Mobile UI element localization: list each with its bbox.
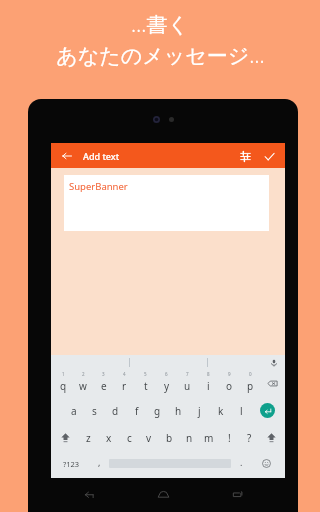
button[interactable]: , [89,451,109,476]
button[interactable]: Backspace [261,370,283,397]
button[interactable]: SuperBanner [64,175,269,231]
staticText: , [98,456,101,468]
staticText: 7 [186,371,189,377]
staticText: p [247,379,254,393]
button[interactable] [208,355,285,370]
staticText: h [175,404,182,418]
staticText: l [240,404,243,418]
staticText: c [127,431,132,445]
staticText: j [198,404,201,418]
button[interactable]: s [84,397,105,424]
staticText: o [226,379,233,393]
staticText: 3 [102,371,105,377]
staticText: n [186,431,193,445]
staticText: t [144,379,148,393]
button[interactable]: Done [260,147,278,165]
button[interactable]: Recents [224,481,250,507]
staticText: a [71,404,77,418]
button[interactable]: m [199,424,219,451]
staticText: …書く [131,10,189,39]
staticText: z [86,431,91,445]
staticText: f [135,404,139,418]
staticText: i [207,379,210,393]
button[interactable]: b [159,424,179,451]
staticText: g [154,404,161,418]
staticText: 9 [228,371,231,377]
button[interactable]: c [119,424,139,451]
button[interactable]: j [189,397,210,424]
button[interactable]: f [126,397,147,424]
button[interactable]: 5 [135,370,156,397]
staticText: r [122,379,127,393]
staticText: 5 [144,371,147,377]
staticText: u [184,379,191,393]
staticText: ? [247,431,252,445]
button[interactable]: 1 [53,370,73,397]
button[interactable]: Enter [252,397,283,424]
button[interactable]: Shift [53,424,78,451]
button[interactable]: k [210,397,231,424]
staticText: x [106,431,112,445]
button[interactable]: 0 [240,370,261,397]
button[interactable]: x [99,424,119,451]
button[interactable]: d [105,397,126,424]
button[interactable]: 4 [114,370,135,397]
staticText: y [164,379,170,393]
button[interactable]: n [179,424,199,451]
button[interactable]: h [168,397,189,424]
staticText: m [204,431,214,445]
button[interactable]: 8 [198,370,219,397]
button[interactable]: 7 [177,370,198,397]
button[interactable]: 2 [73,370,93,397]
button[interactable]: 3 [93,370,114,397]
button[interactable]: Voice input [268,357,280,369]
staticText: s [92,404,97,418]
staticText: 2 [82,371,85,377]
button[interactable]: Emoji [251,451,282,476]
staticText: q [60,379,67,393]
button[interactable]: ?123 [54,451,89,476]
staticText: v [146,431,152,445]
staticText: 1 [62,371,65,377]
staticText: ?123 [63,459,80,469]
button[interactable]: v [139,424,159,451]
button[interactable]: Home [150,481,176,507]
button[interactable]: 9 [219,370,240,397]
staticText: . [240,456,243,468]
staticText: SuperBanner [69,180,128,193]
staticText: ! [228,431,231,445]
staticText: あなたのメッセージ… [56,41,265,70]
button[interactable]: g [147,397,168,424]
staticText: 0 [249,371,252,377]
button[interactable]: Back [58,147,76,165]
staticText: 8 [207,371,210,377]
button[interactable]: Shift [259,424,283,451]
button[interactable]: 6 [156,370,177,397]
staticText: 4 [123,371,126,377]
staticText: w [79,379,87,393]
staticText: d [112,404,119,418]
button[interactable]: Text options [236,147,254,165]
button[interactable]: l [231,397,252,424]
button[interactable]: . [231,451,251,476]
button[interactable]: a [63,397,84,424]
button[interactable]: ! [219,424,239,451]
staticText: 6 [165,371,168,377]
staticText: k [218,404,224,418]
staticText: e [101,379,107,393]
button[interactable]: z [78,424,99,451]
staticText: Add text [83,150,120,162]
button[interactable]: Back [76,481,102,507]
staticText: b [166,431,173,445]
button[interactable]: ? [239,424,259,451]
